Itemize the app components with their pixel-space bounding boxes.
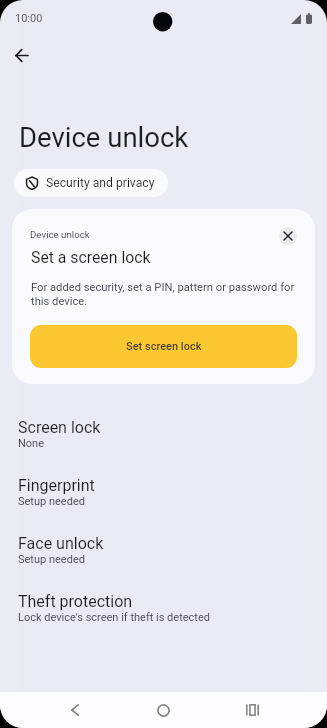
button[interactable]: Home xyxy=(143,692,184,728)
button[interactable]: Fingerprint xyxy=(0,472,327,524)
staticText: Setup needed xyxy=(18,553,85,566)
staticText: Lock device's screen if theft is detecte… xyxy=(18,611,210,624)
staticText: Screen lock xyxy=(18,418,101,437)
button[interactable]: Dismiss xyxy=(279,227,297,245)
button[interactable]: Back xyxy=(0,33,43,77)
button[interactable]: Screen lock xyxy=(0,414,327,466)
button[interactable]: Back xyxy=(54,692,95,728)
staticText: Set screen lock xyxy=(126,340,202,353)
staticText: 10:00 xyxy=(15,12,43,25)
staticText: Theft protection xyxy=(18,592,133,611)
staticText: Set a screen lock xyxy=(31,248,151,267)
staticText: Device unlock xyxy=(19,121,189,153)
button[interactable]: Security and privacy xyxy=(14,169,168,197)
button[interactable]: Theft protection xyxy=(0,588,327,640)
button[interactable]: Set screen lock xyxy=(30,325,297,368)
staticText: For added security, set a PIN, pattern o… xyxy=(31,280,297,308)
staticText: Setup needed xyxy=(18,495,85,508)
button[interactable]: Recent apps xyxy=(232,692,273,728)
staticText: Device unlock xyxy=(30,229,90,240)
staticText: Security and privacy xyxy=(46,176,155,190)
button[interactable]: Face unlock xyxy=(0,530,327,582)
staticText: Face unlock xyxy=(18,534,104,553)
staticText: Fingerprint xyxy=(18,476,95,495)
staticText: None xyxy=(18,437,45,450)
